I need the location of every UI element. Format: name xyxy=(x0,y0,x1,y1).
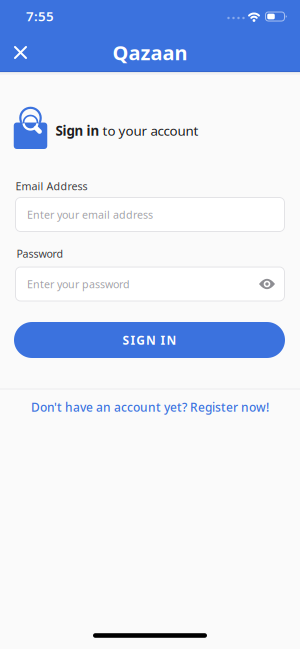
button[interactable]: Show password xyxy=(259,278,285,289)
staticText: Enter your password xyxy=(27,277,130,291)
staticText: Password xyxy=(16,246,63,261)
staticText: 7:55 xyxy=(26,7,54,25)
button[interactable]: Close xyxy=(6,38,34,66)
staticText: SIGN IN xyxy=(123,332,176,348)
staticText: Don't have an account yet? Register now! xyxy=(31,399,269,415)
staticText: Email Address xyxy=(15,179,87,193)
staticText: Qazaan xyxy=(112,39,187,66)
button[interactable]: Don't have an account yet? Register now! xyxy=(31,399,269,415)
button[interactable]: SIGN IN xyxy=(14,322,285,358)
staticText: Enter your email address xyxy=(27,207,153,222)
staticText: Sign in to your account xyxy=(55,122,198,139)
